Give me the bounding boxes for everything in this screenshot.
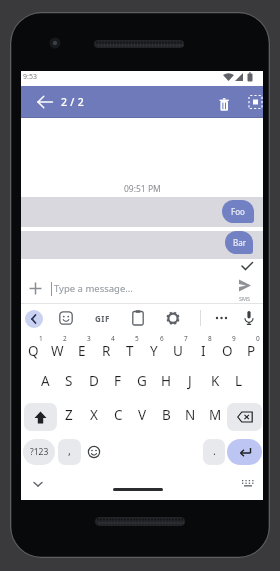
staticText: 2 (63, 334, 67, 343)
staticText: GIF (95, 313, 110, 324)
staticText: R (102, 342, 111, 360)
staticText: N (185, 406, 196, 424)
button[interactable] (113, 488, 163, 491)
button[interactable] (25, 310, 43, 328)
button[interactable]: I (191, 337, 215, 365)
button[interactable] (33, 90, 57, 114)
staticText: F (114, 372, 122, 390)
button[interactable]: Q (21, 337, 45, 365)
staticText: K (211, 372, 220, 390)
staticText: 9 (232, 334, 236, 343)
staticText: D (89, 372, 99, 390)
button[interactable]: W (45, 337, 69, 365)
staticText: H (161, 372, 172, 390)
button[interactable] (243, 90, 267, 114)
staticText: Foo (231, 206, 245, 217)
staticText: ?123 (30, 446, 49, 458)
button[interactable]: E (70, 337, 94, 365)
button[interactable] (28, 474, 48, 494)
staticText: L (235, 372, 243, 390)
button[interactable]: N (178, 401, 202, 429)
button[interactable]: , (58, 439, 81, 465)
button[interactable]: M (203, 401, 227, 429)
staticText: U (173, 342, 183, 360)
button[interactable]: O (215, 337, 239, 365)
button[interactable]: Bar (21, 231, 263, 259)
staticText: 2 / 2 (61, 95, 85, 109)
button[interactable]: P (239, 337, 263, 365)
button[interactable]: X (82, 401, 106, 429)
staticText: , (68, 443, 71, 458)
button[interactable]: Z (57, 401, 81, 429)
button[interactable]: D (82, 367, 106, 395)
staticText: . (213, 443, 216, 458)
button[interactable]: F (106, 367, 130, 395)
button[interactable]: C (106, 401, 130, 429)
staticText: P (247, 342, 256, 360)
button[interactable]: . (203, 439, 225, 465)
staticText: 7 (184, 334, 188, 343)
staticText: Z (65, 406, 73, 424)
staticText: I (201, 342, 206, 360)
button[interactable] (227, 403, 262, 431)
button[interactable] (128, 308, 148, 328)
button[interactable] (24, 277, 47, 300)
staticText: M (209, 406, 222, 424)
button[interactable]: B (154, 401, 178, 429)
staticText: Type a message... (54, 282, 133, 295)
staticText: G (137, 372, 147, 390)
staticText: 6 (160, 334, 164, 343)
button[interactable]: S (57, 367, 81, 395)
button[interactable] (238, 474, 258, 494)
button[interactable] (163, 308, 183, 328)
staticText: C (114, 406, 123, 424)
staticText: 1 (39, 334, 43, 343)
button[interactable]: R (94, 337, 118, 365)
button[interactable]: H (154, 367, 178, 395)
staticText: O (222, 342, 233, 360)
button[interactable] (227, 439, 262, 465)
staticText: B (162, 406, 171, 424)
staticText: X (90, 406, 98, 424)
button[interactable]: U (166, 337, 190, 365)
button[interactable] (56, 308, 76, 328)
staticText: 4 (111, 334, 115, 343)
button[interactable] (84, 442, 104, 462)
staticText: SMS (239, 295, 251, 302)
staticText: W (51, 342, 64, 360)
button[interactable]: J (178, 367, 202, 395)
staticText: A (41, 372, 50, 390)
staticText: 8 (208, 334, 212, 343)
staticText: S (65, 372, 73, 390)
button[interactable] (211, 308, 232, 328)
button[interactable]: GIF (91, 308, 113, 328)
button[interactable]: G (130, 367, 154, 395)
staticText: Y (150, 342, 158, 360)
button[interactable]: Y (142, 337, 166, 365)
button[interactable]: ?123 (23, 439, 55, 465)
staticText: 3 (87, 334, 91, 343)
button[interactable]: K (203, 367, 227, 395)
staticText: 0 (256, 334, 260, 343)
button[interactable]: SMS (228, 271, 262, 303)
staticText: J (188, 372, 192, 390)
button[interactable] (212, 90, 236, 114)
button[interactable] (24, 403, 57, 431)
button[interactable]: T (118, 337, 142, 365)
button[interactable]: Foo (21, 197, 263, 227)
staticText: 09:51 PM (124, 183, 161, 195)
staticText: 5 (135, 334, 139, 343)
staticText: Bar (233, 237, 246, 248)
button[interactable] (239, 308, 259, 328)
staticText: T (126, 342, 134, 360)
button[interactable]: A (33, 367, 57, 395)
staticText: Q (28, 342, 39, 360)
button[interactable]: L (227, 367, 251, 395)
button[interactable]: Type a message... (54, 277, 204, 300)
staticText: E (78, 342, 86, 360)
button[interactable]: V (130, 401, 154, 429)
staticText: 9:53 (23, 72, 37, 82)
staticText: V (138, 406, 147, 424)
